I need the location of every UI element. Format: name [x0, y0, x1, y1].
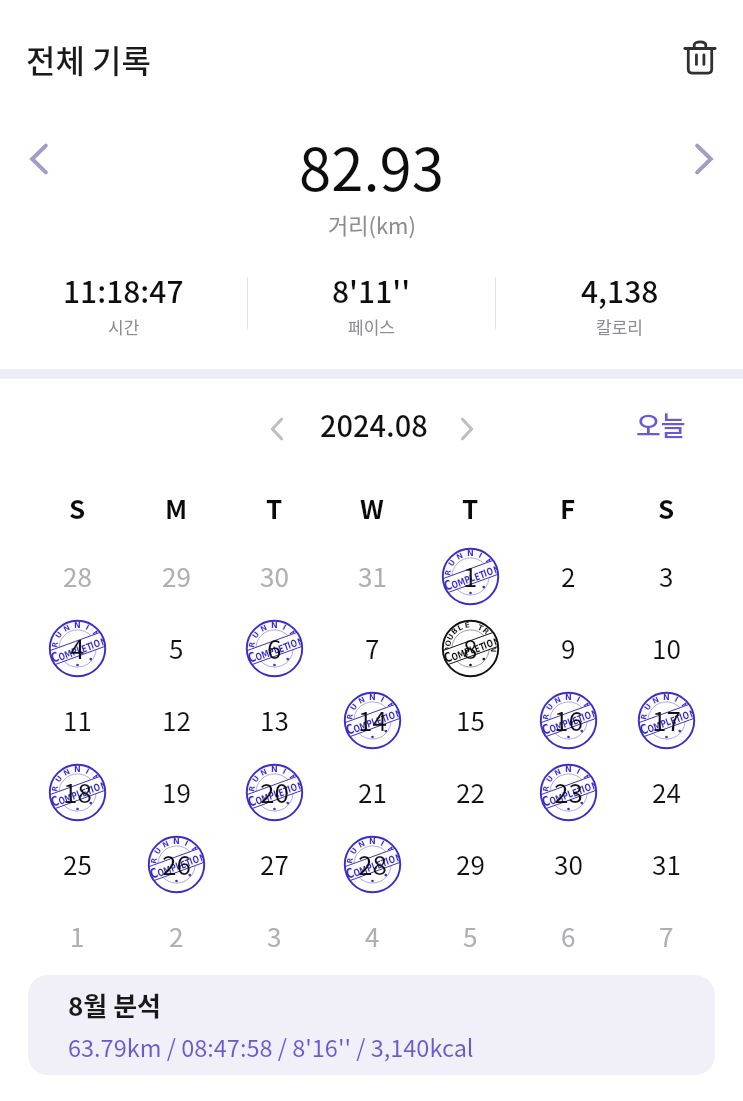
button[interactable]: 4 [28, 612, 127, 684]
button[interactable]: 25 [28, 828, 127, 900]
staticText: 4 [70, 629, 85, 667]
button[interactable]: 26 [127, 828, 225, 900]
button[interactable]: 27 [225, 828, 323, 900]
staticText: 12 [162, 701, 191, 739]
button[interactable]: Next period [673, 128, 735, 190]
button[interactable]: 7 [323, 612, 421, 684]
button[interactable]: 29 [127, 540, 225, 612]
button[interactable]: 22 [421, 756, 519, 828]
button[interactable]: 2 [519, 540, 617, 612]
staticText: M [165, 489, 188, 527]
staticText: 7 [659, 917, 674, 955]
button[interactable]: 7 [617, 900, 715, 972]
staticText: 1 [463, 557, 478, 595]
staticText: 칼로리 [596, 314, 643, 339]
staticText: 31 [358, 557, 387, 595]
staticText: 6 [561, 917, 576, 955]
staticText: 2 [169, 917, 184, 955]
staticText: 30 [554, 845, 583, 883]
button[interactable]: 20 [225, 756, 323, 828]
button[interactable]: 30 [519, 828, 617, 900]
button[interactable]: 16 [519, 684, 617, 756]
button[interactable]: 14 [323, 684, 421, 756]
button[interactable]: 28 [28, 540, 127, 612]
staticText: 11:18:47 [63, 268, 184, 311]
staticText: W [360, 489, 384, 527]
staticText: 13 [260, 701, 289, 739]
staticText: 28 [63, 557, 92, 595]
button[interactable]: 19 [127, 756, 225, 828]
staticText: 3 [659, 557, 674, 595]
staticText: F [560, 489, 576, 527]
button[interactable]: Next month [445, 407, 489, 451]
button[interactable]: 17 [617, 684, 715, 756]
staticText: 5 [169, 629, 184, 667]
staticText: 20 [260, 773, 289, 811]
button[interactable]: 24 [617, 756, 715, 828]
button[interactable]: 18 [28, 756, 127, 828]
button[interactable]: 5 [421, 900, 519, 972]
staticText: 26 [162, 845, 191, 883]
staticText: 4 [365, 917, 380, 955]
button[interactable]: 31 [323, 540, 421, 612]
button[interactable]: Delete all records [673, 30, 727, 84]
button[interactable]: 29 [421, 828, 519, 900]
staticText: 8'11'' [332, 268, 411, 311]
staticText: 82.93 [299, 124, 444, 208]
button[interactable]: 28 [323, 828, 421, 900]
staticText: S [69, 489, 86, 527]
staticText: 8 [463, 629, 478, 667]
button[interactable]: 6 [225, 612, 323, 684]
button[interactable]: 2 [127, 900, 225, 972]
button[interactable]: Previous month [255, 407, 299, 451]
button[interactable]: 31 [617, 828, 715, 900]
button[interactable]: 1 [28, 900, 127, 972]
staticText: 오늘 [636, 405, 686, 444]
button[interactable]: 11 [28, 684, 127, 756]
staticText: 시간 [108, 314, 140, 339]
button[interactable]: 6 [519, 900, 617, 972]
button[interactable]: 1 [421, 540, 519, 612]
staticText: 25 [63, 845, 92, 883]
staticText: 63.79km / 08:47:58 / 8'16'' / 3,140kcal [68, 1030, 474, 1064]
button[interactable]: 8월 분석 [28, 975, 715, 1075]
button[interactable]: Previous period [8, 128, 70, 190]
staticText: 30 [260, 557, 289, 595]
staticText: 2024.08 [320, 403, 428, 445]
staticText: 14 [358, 701, 387, 739]
staticText: 17 [652, 701, 681, 739]
staticText: 28 [358, 845, 387, 883]
button[interactable]: 3 [225, 900, 323, 972]
staticText: 7 [365, 629, 380, 667]
button[interactable]: 3 [617, 540, 715, 612]
button[interactable]: 12 [127, 684, 225, 756]
staticText: 22 [456, 773, 485, 811]
staticText: 3 [267, 917, 282, 955]
button[interactable]: 15 [421, 684, 519, 756]
staticText: 29 [456, 845, 485, 883]
staticText: 5 [463, 917, 478, 955]
staticText: 4,138 [581, 268, 659, 311]
staticText: 6 [267, 629, 282, 667]
staticText: 19 [162, 773, 191, 811]
button[interactable]: 30 [225, 540, 323, 612]
staticText: T [266, 489, 283, 527]
button[interactable]: 4 [323, 900, 421, 972]
button[interactable]: 21 [323, 756, 421, 828]
staticText: 31 [652, 845, 681, 883]
staticText: 18 [63, 773, 92, 811]
button[interactable]: 9 [519, 612, 617, 684]
staticText: 8월 분석 [68, 986, 162, 1024]
staticText: 거리(km) [328, 208, 416, 240]
button[interactable]: 10 [617, 612, 715, 684]
staticText: 1 [70, 917, 85, 955]
staticText: 15 [456, 701, 485, 739]
button[interactable]: 5 [127, 612, 225, 684]
staticText: 9 [561, 629, 576, 667]
button[interactable]: 오늘 [624, 395, 698, 454]
staticText: 전체 기록 [26, 36, 151, 82]
staticText: 16 [554, 701, 583, 739]
button[interactable]: 13 [225, 684, 323, 756]
button[interactable]: 8 [421, 612, 519, 684]
button[interactable]: 23 [519, 756, 617, 828]
